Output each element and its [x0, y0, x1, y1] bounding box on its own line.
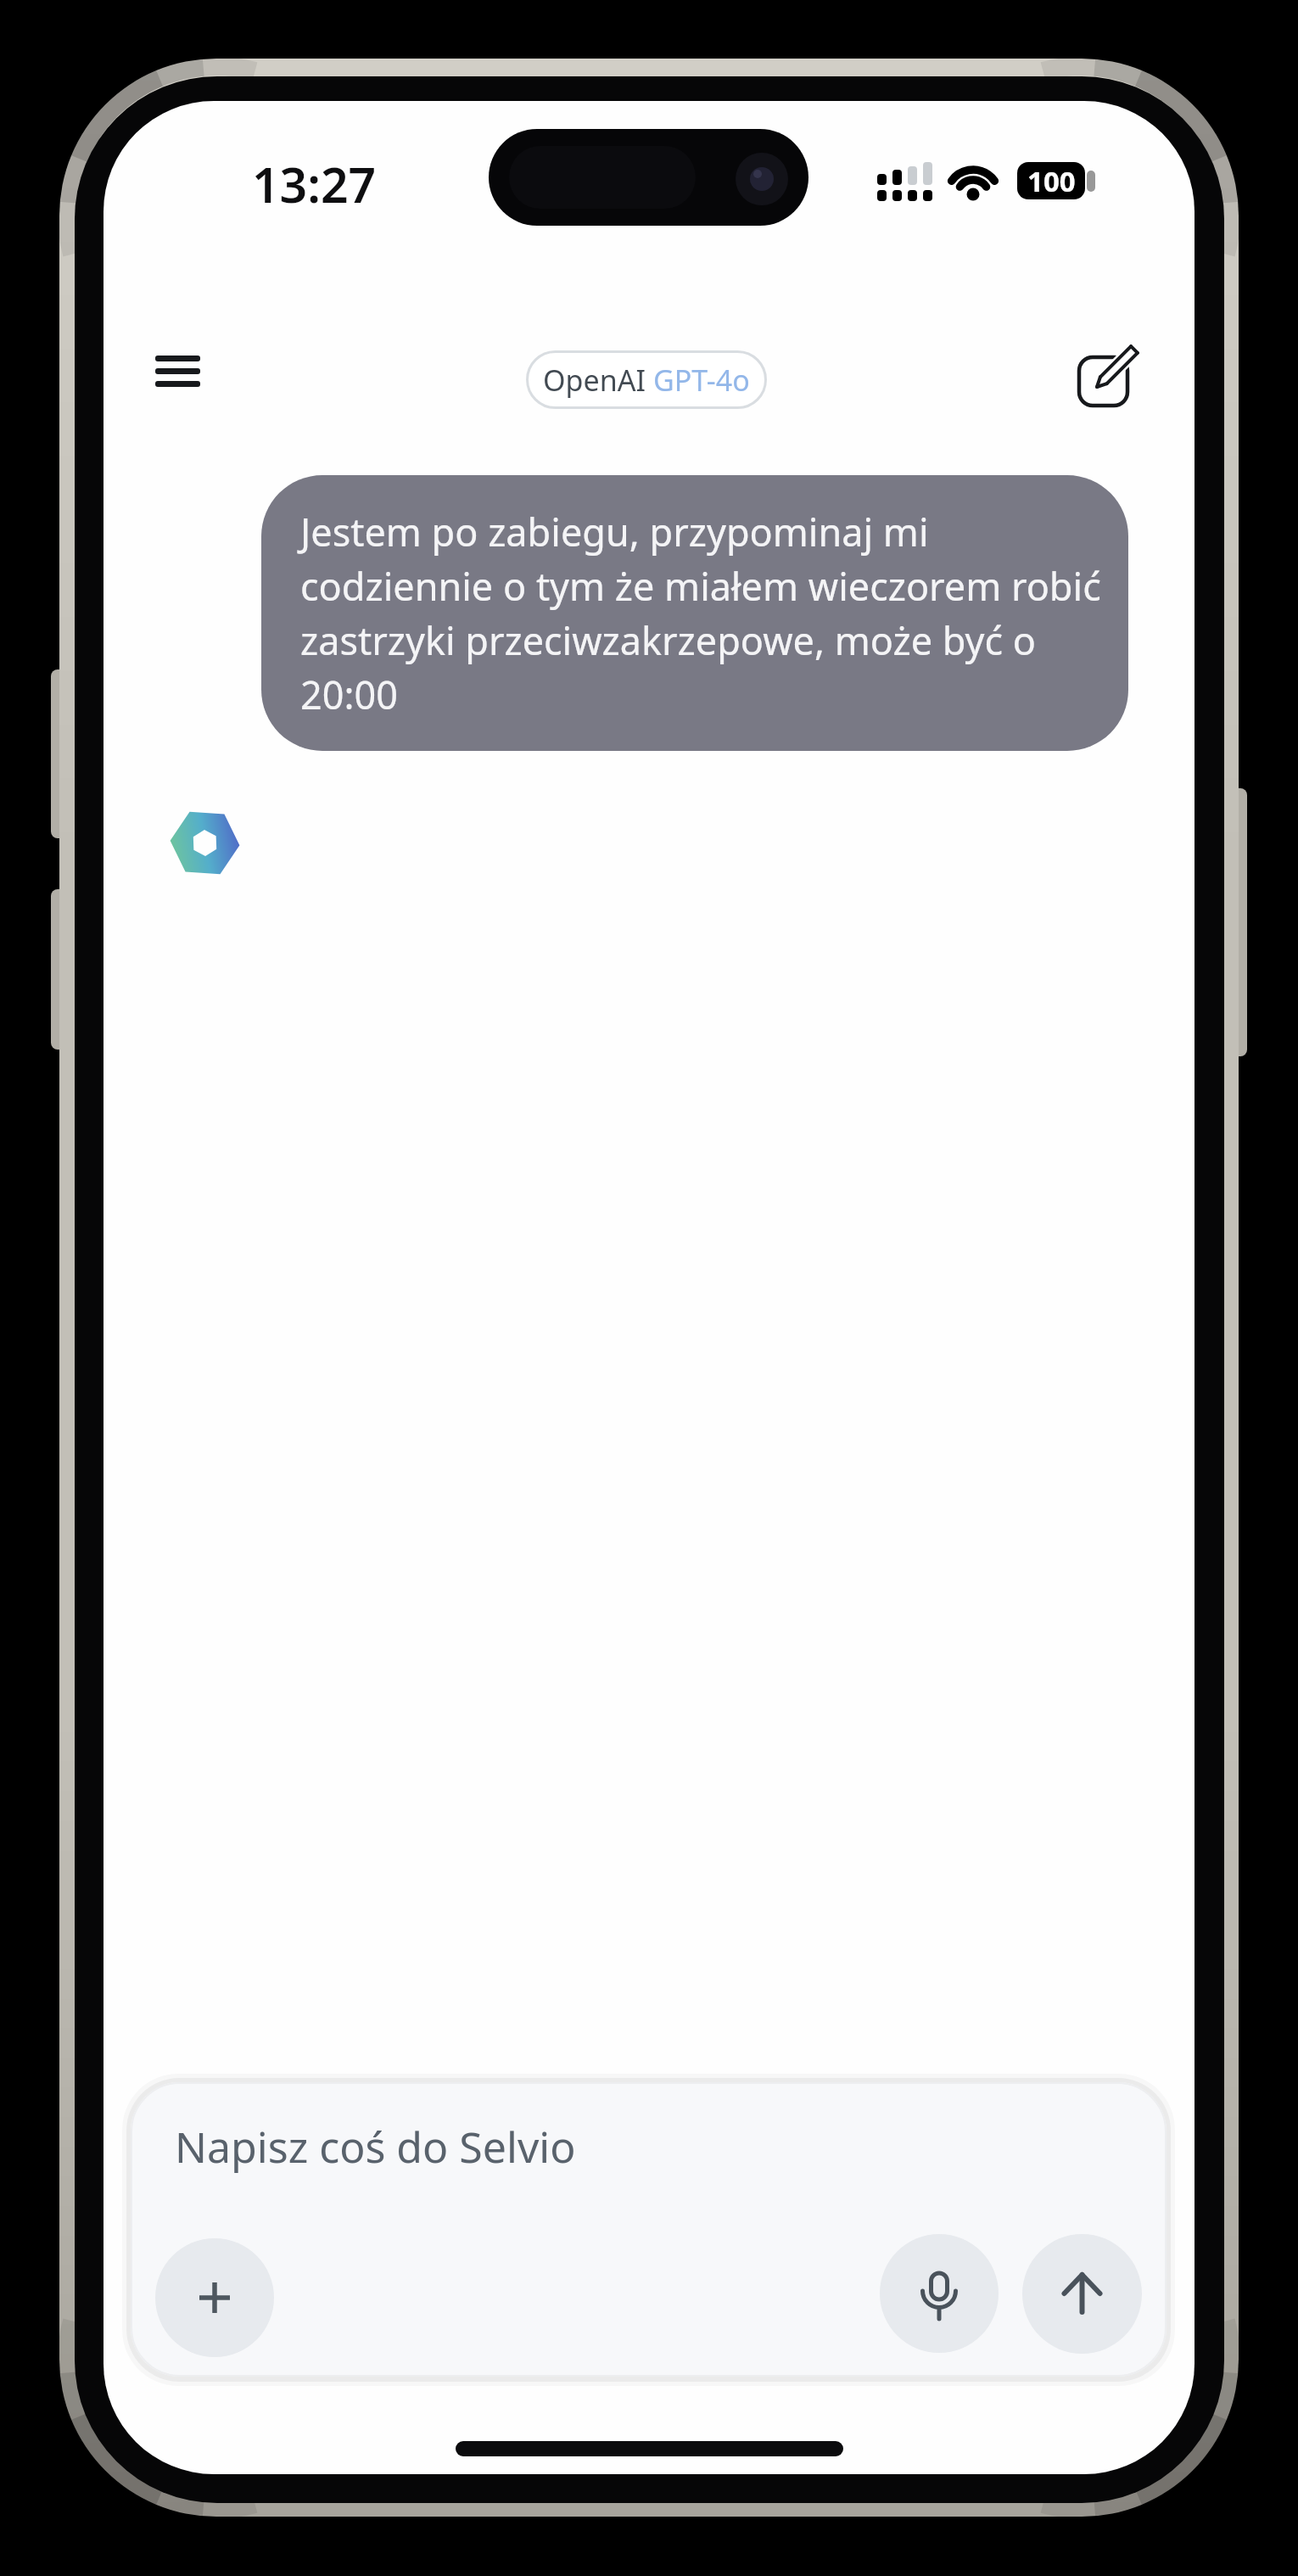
- button[interactable]: [880, 2234, 999, 2353]
- staticText: 13:27: [252, 151, 377, 217]
- button[interactable]: Napisz coś do Selvio: [131, 2082, 1167, 2377]
- staticText: 100: [1027, 162, 1076, 199]
- button[interactable]: [143, 341, 214, 402]
- button[interactable]: [155, 2238, 274, 2357]
- staticText: Jestem po zabiegu, przypominaj mi codzie…: [300, 506, 1101, 720]
- button[interactable]: OpenAI: [526, 350, 767, 409]
- button[interactable]: [1022, 2234, 1142, 2354]
- staticText: GPT-4o: [653, 361, 750, 400]
- button[interactable]: [1067, 338, 1145, 416]
- staticText: Napisz coś do Selvio: [175, 2118, 576, 2176]
- staticText: OpenAI: [543, 361, 653, 400]
